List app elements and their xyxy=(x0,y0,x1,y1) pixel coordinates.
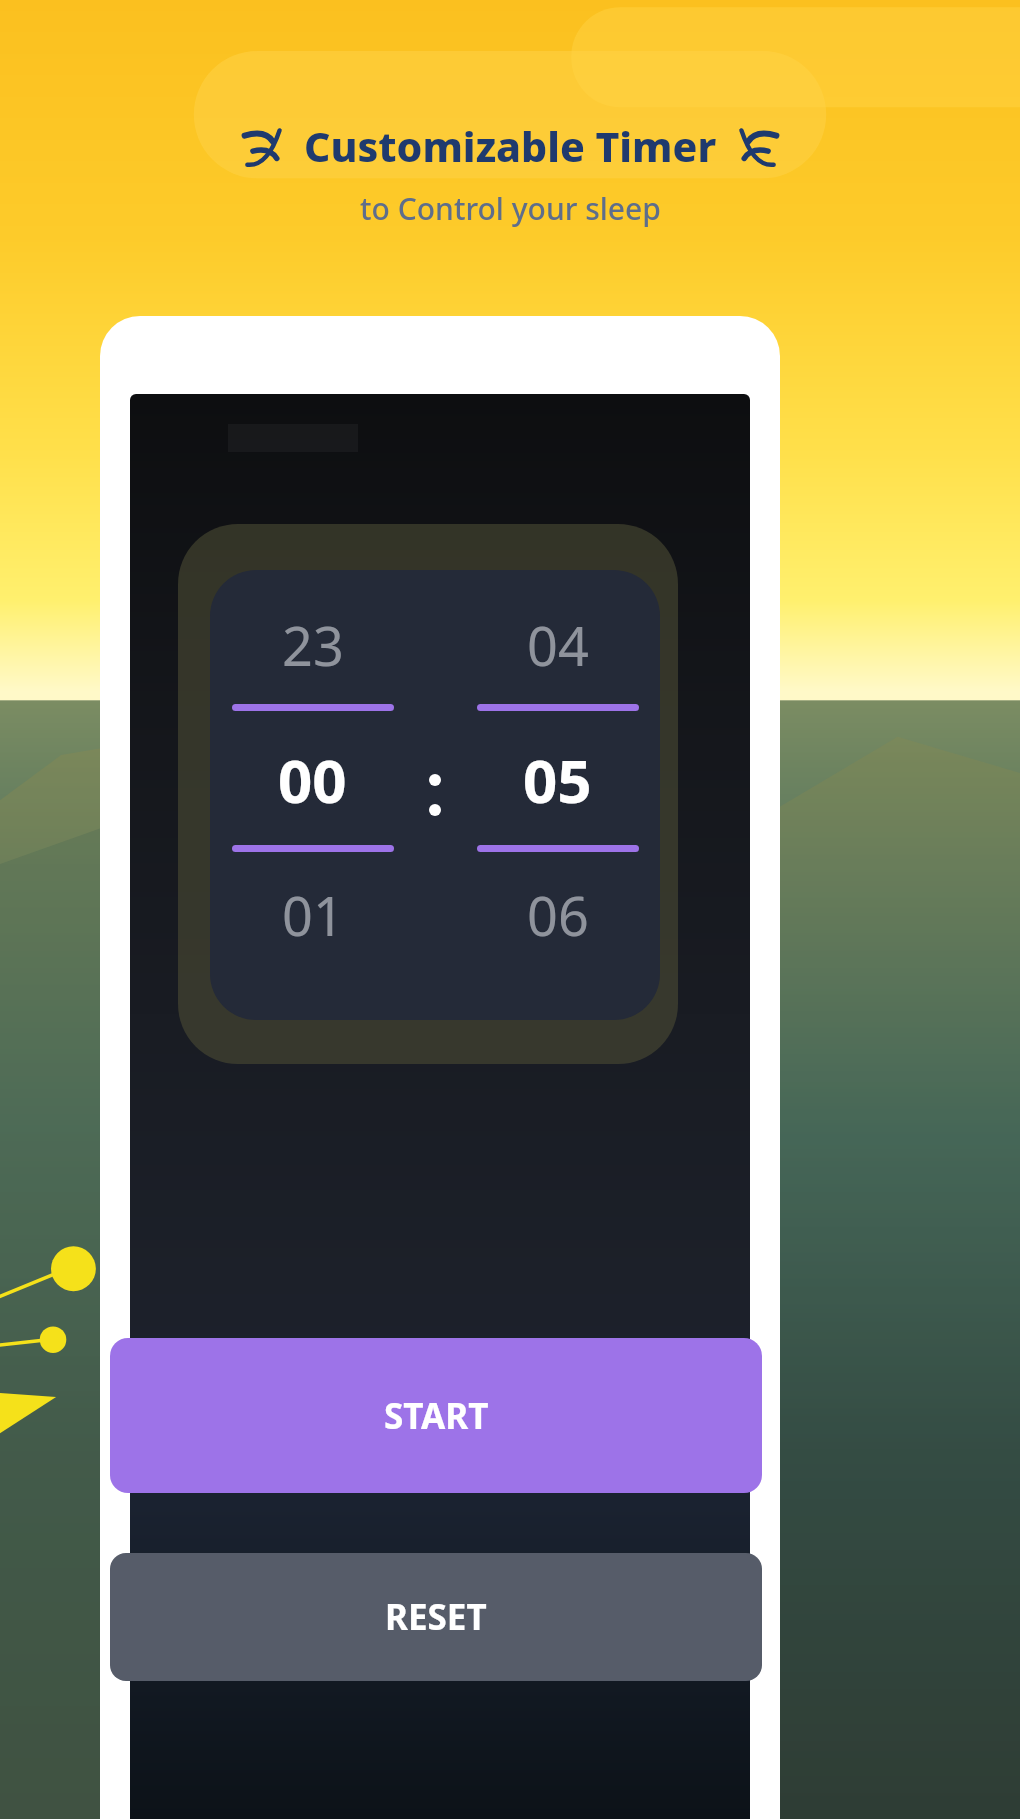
staticText: 23 xyxy=(282,608,344,682)
button[interactable]: RESET xyxy=(110,1553,762,1681)
button[interactable]: START xyxy=(110,1338,762,1493)
button[interactable]: 04 xyxy=(455,570,660,1020)
staticText: Customizable Timer xyxy=(304,118,717,174)
staticText: to Control your sleep xyxy=(360,188,661,229)
staticText: START xyxy=(384,1392,489,1440)
staticText: 01 xyxy=(282,878,344,952)
staticText: RESET xyxy=(385,1593,487,1641)
staticText: 04 xyxy=(527,608,589,682)
staticText: 00 xyxy=(278,739,347,821)
staticText: 06 xyxy=(527,878,589,952)
button[interactable]: 23 xyxy=(210,570,415,1020)
staticText: 05 xyxy=(523,739,592,821)
